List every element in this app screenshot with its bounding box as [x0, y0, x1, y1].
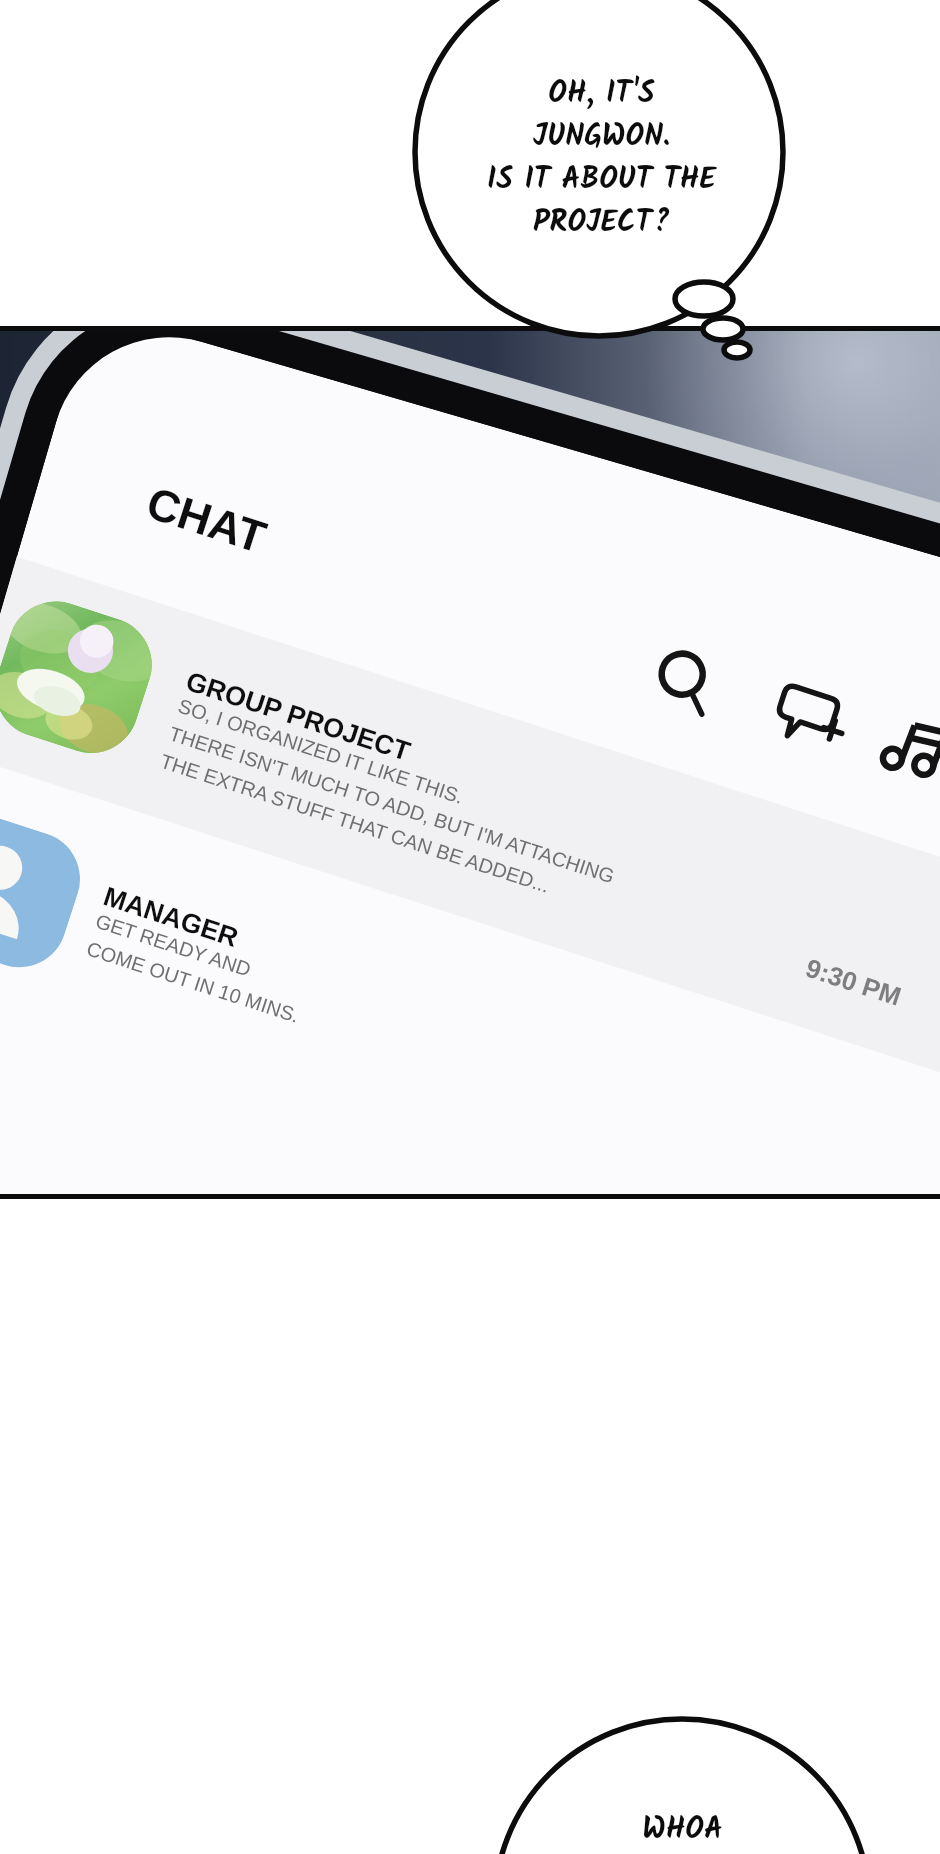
button[interactable]: MANAGER: [0, 770, 940, 1194]
staticText: GET READY AND COME OUT IN 10 MINS.: [82, 909, 313, 1027]
staticText: CHAT: [140, 477, 273, 563]
button[interactable]: Search: [648, 644, 724, 719]
button[interactable]: Music: [875, 713, 940, 792]
staticText: MANAGER: [99, 881, 243, 953]
staticText: SO, I ORGANIZED IT LIKE THIS. THERE ISN'…: [154, 694, 630, 916]
button[interactable]: New chat: [767, 681, 858, 764]
staticText: WHOA: [642, 1806, 723, 1854]
staticText: GROUP PROJECT: [180, 666, 416, 767]
staticText: 9:30 PM: [802, 952, 906, 1011]
staticText: OH, IT'S JUNGWON. IS IT ABOUT THE PROJEC…: [487, 70, 716, 247]
button[interactable]: GROUP PROJECT: [0, 553, 940, 1086]
